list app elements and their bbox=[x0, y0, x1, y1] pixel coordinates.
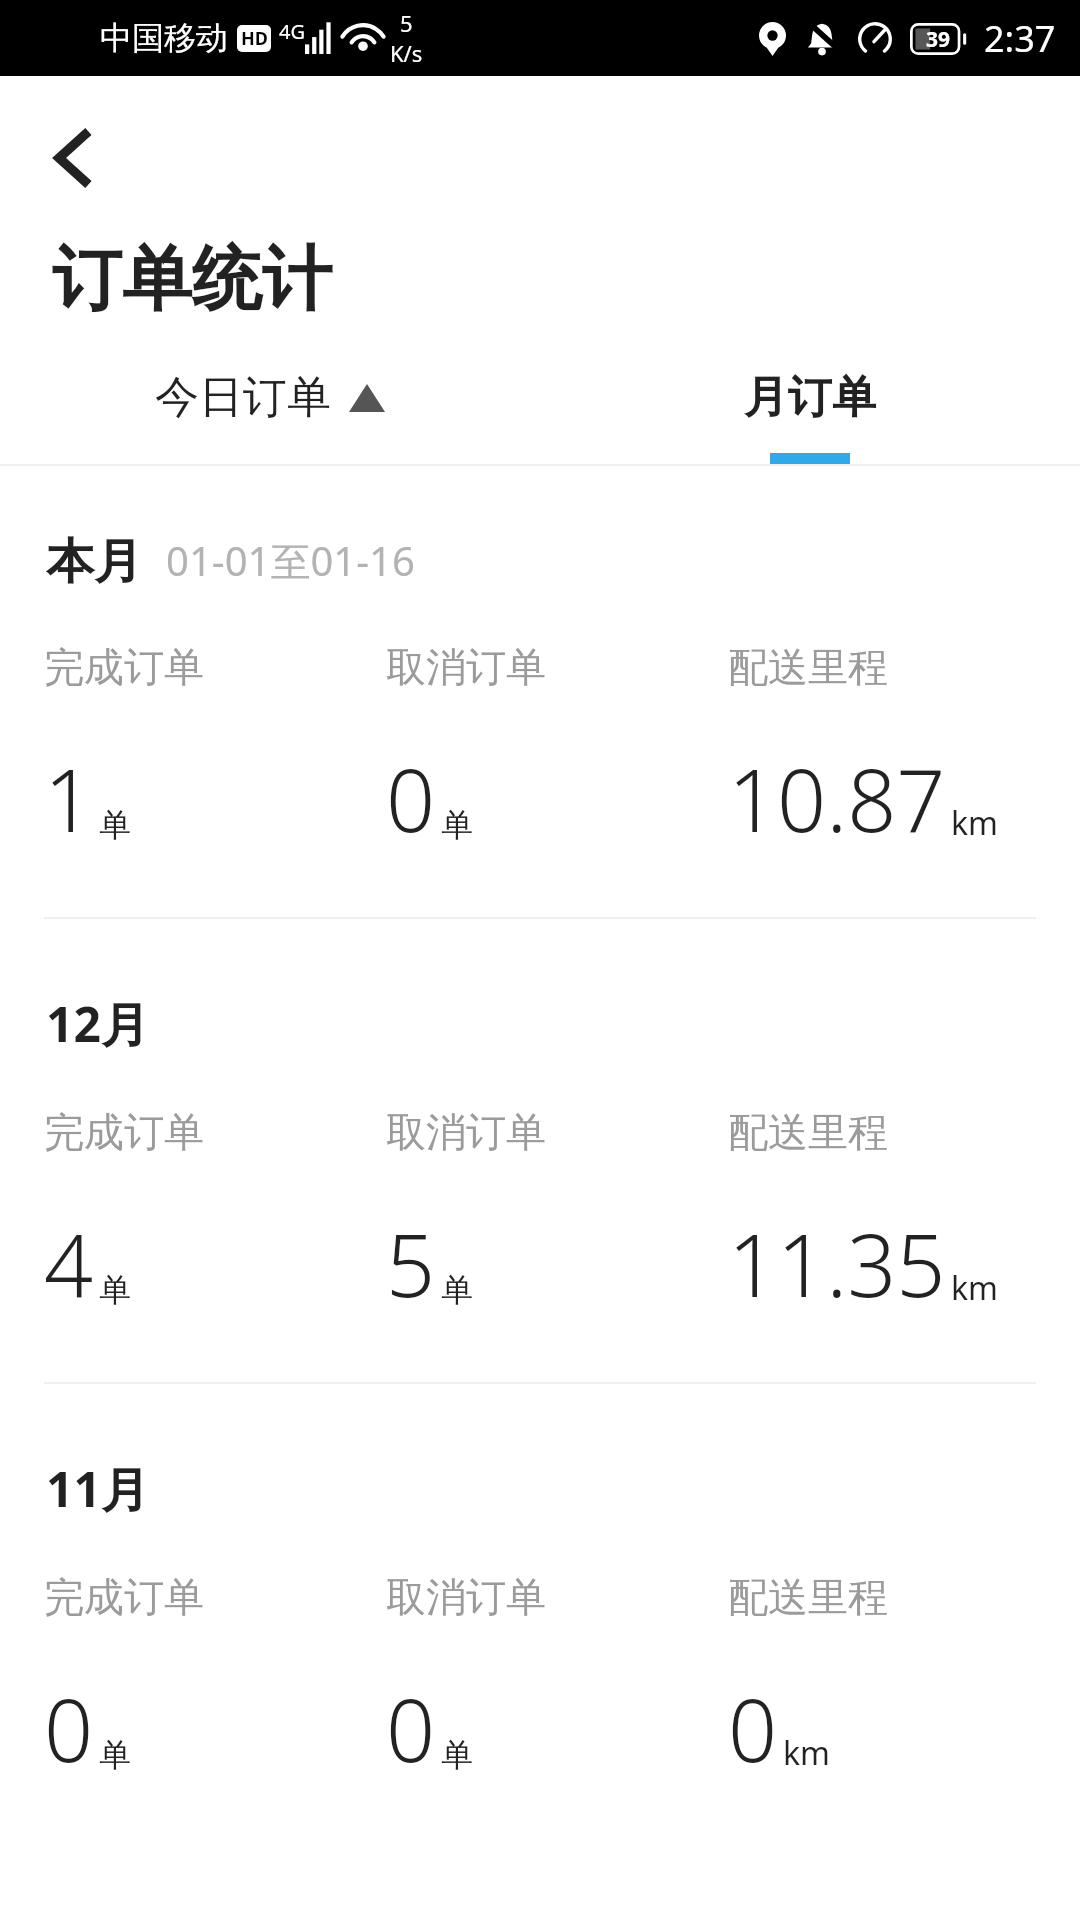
staticText: 中国移动 bbox=[100, 18, 228, 58]
staticText: 10.87 bbox=[728, 740, 946, 857]
button[interactable]: 月订单 bbox=[540, 364, 1080, 464]
staticText: 单 bbox=[441, 805, 473, 845]
staticText: 取消订单 bbox=[386, 1107, 546, 1157]
staticText: 39 bbox=[926, 25, 951, 54]
staticText: 12月 bbox=[46, 991, 149, 1057]
staticText: HD bbox=[241, 26, 268, 51]
staticText: 配送里程 bbox=[728, 642, 888, 692]
staticText: 单 bbox=[99, 805, 131, 845]
staticText: 01-01至01-16 bbox=[166, 533, 415, 588]
staticText: 完成订单 bbox=[44, 1107, 204, 1157]
staticText: 0 bbox=[386, 1670, 436, 1787]
staticText: km bbox=[951, 801, 999, 845]
staticText: 单 bbox=[99, 1735, 131, 1775]
staticText: 1 bbox=[44, 740, 94, 857]
button[interactable]: 今日订单 bbox=[0, 364, 540, 464]
staticText: 单 bbox=[441, 1735, 473, 1775]
staticText: 2:37 bbox=[984, 14, 1056, 63]
staticText: 单 bbox=[99, 1270, 131, 1310]
staticText: 取消订单 bbox=[386, 642, 546, 692]
staticText: 订单统计 bbox=[52, 236, 332, 324]
staticText: 11月 bbox=[46, 1456, 149, 1522]
staticText: 配送里程 bbox=[728, 1107, 888, 1157]
staticText: 4 bbox=[44, 1205, 94, 1322]
staticText: 月订单 bbox=[744, 370, 876, 425]
staticText: 配送里程 bbox=[728, 1572, 888, 1622]
staticText: 0 bbox=[386, 740, 436, 857]
staticText: 取消订单 bbox=[386, 1572, 546, 1622]
staticText: 今日订单 bbox=[155, 370, 331, 425]
staticText: 完成订单 bbox=[44, 642, 204, 692]
staticText: 完成订单 bbox=[44, 1572, 204, 1622]
staticText: km bbox=[951, 1266, 999, 1310]
staticText: 0 bbox=[728, 1670, 778, 1787]
staticText: 0 bbox=[44, 1670, 94, 1787]
staticText: 4G bbox=[279, 18, 305, 45]
button[interactable]: Back bbox=[30, 116, 114, 200]
staticText: 11.35 bbox=[728, 1205, 946, 1322]
staticText: K/s bbox=[390, 38, 423, 68]
staticText: 5 bbox=[400, 8, 413, 38]
staticText: 本月 bbox=[46, 532, 142, 592]
staticText: 单 bbox=[441, 1270, 473, 1310]
staticText: 5 bbox=[386, 1205, 436, 1322]
staticText: km bbox=[783, 1731, 831, 1775]
